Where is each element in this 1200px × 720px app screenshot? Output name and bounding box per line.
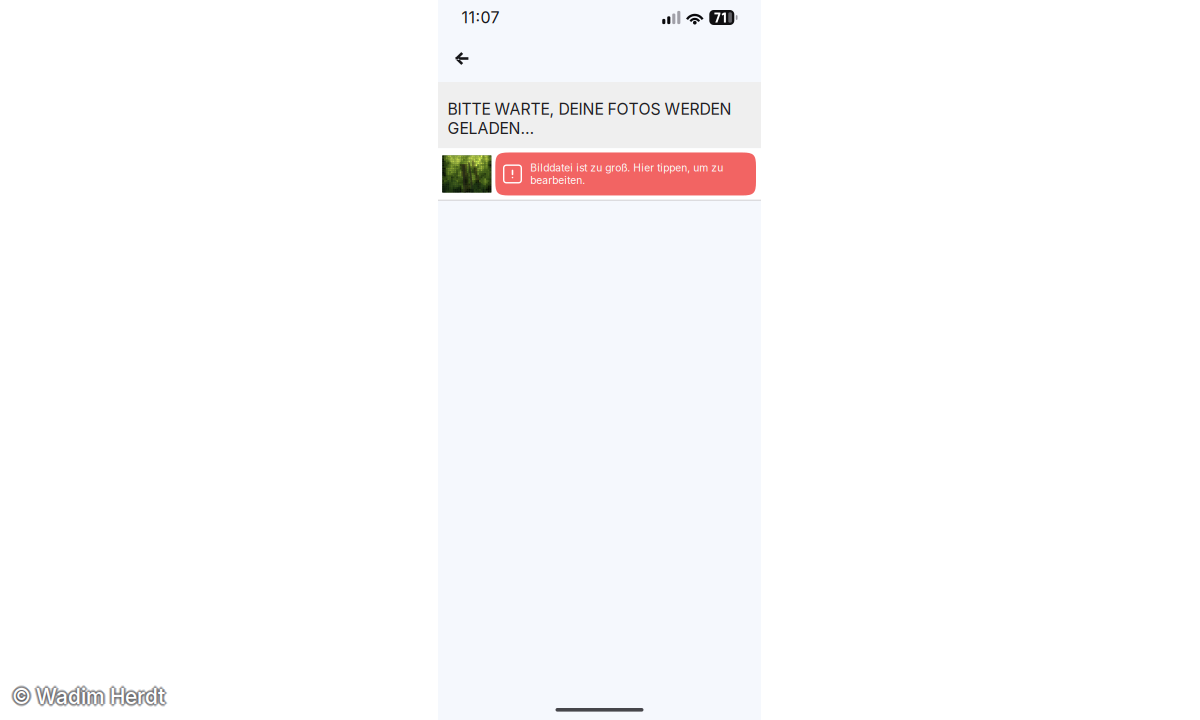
staticText: Bilddatei ist zu groß. Hier tippen, um z… bbox=[530, 161, 723, 186]
button[interactable]: Bilddatei ist zu groß. Hier tippen, um z… bbox=[438, 148, 761, 201]
staticText: BITTE WARTE, DEINE FOTOS WERDEN GELADEN… bbox=[447, 99, 731, 138]
staticText: 11:07 bbox=[461, 8, 499, 27]
staticText: © Wadim Herdt bbox=[12, 684, 165, 709]
button[interactable]: Back bbox=[444, 35, 478, 82]
